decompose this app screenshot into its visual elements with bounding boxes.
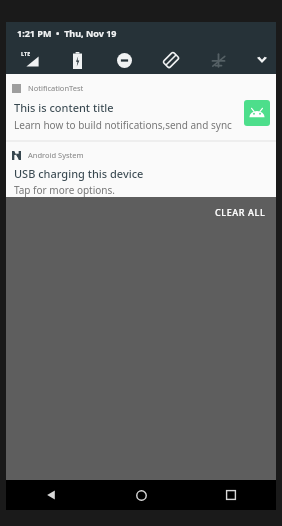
button[interactable]: Home (96, 490, 186, 501)
button[interactable]: Expand quick settings (247, 46, 276, 74)
staticText: Tap for more options. (14, 183, 115, 197)
button[interactable]: Recent apps (186, 490, 276, 500)
button[interactable]: Mobile signal LTE (14, 46, 46, 74)
staticText: This is content title (14, 100, 114, 115)
button[interactable]: Do not disturb (108, 46, 140, 74)
staticText: LTE (21, 50, 31, 57)
staticText: Learn how to build notifications,send an… (14, 118, 232, 132)
button[interactable]: NotificationTest (6, 74, 276, 140)
staticText: 1:21 PM • Thu, Nov 19 (17, 27, 117, 39)
staticText: NotificationTest (28, 83, 84, 93)
button[interactable]: Battery charging (61, 46, 93, 74)
button[interactable]: Android System (6, 142, 276, 197)
button[interactable]: Airplane mode off (202, 46, 234, 74)
button[interactable]: Back (6, 489, 96, 501)
button[interactable]: Auto rotate (155, 46, 187, 74)
staticText: USB charging this device (14, 166, 144, 181)
staticText: Android System (28, 150, 84, 160)
button[interactable]: CLEAR ALL (205, 199, 276, 225)
staticText: CLEAR ALL (215, 206, 266, 218)
